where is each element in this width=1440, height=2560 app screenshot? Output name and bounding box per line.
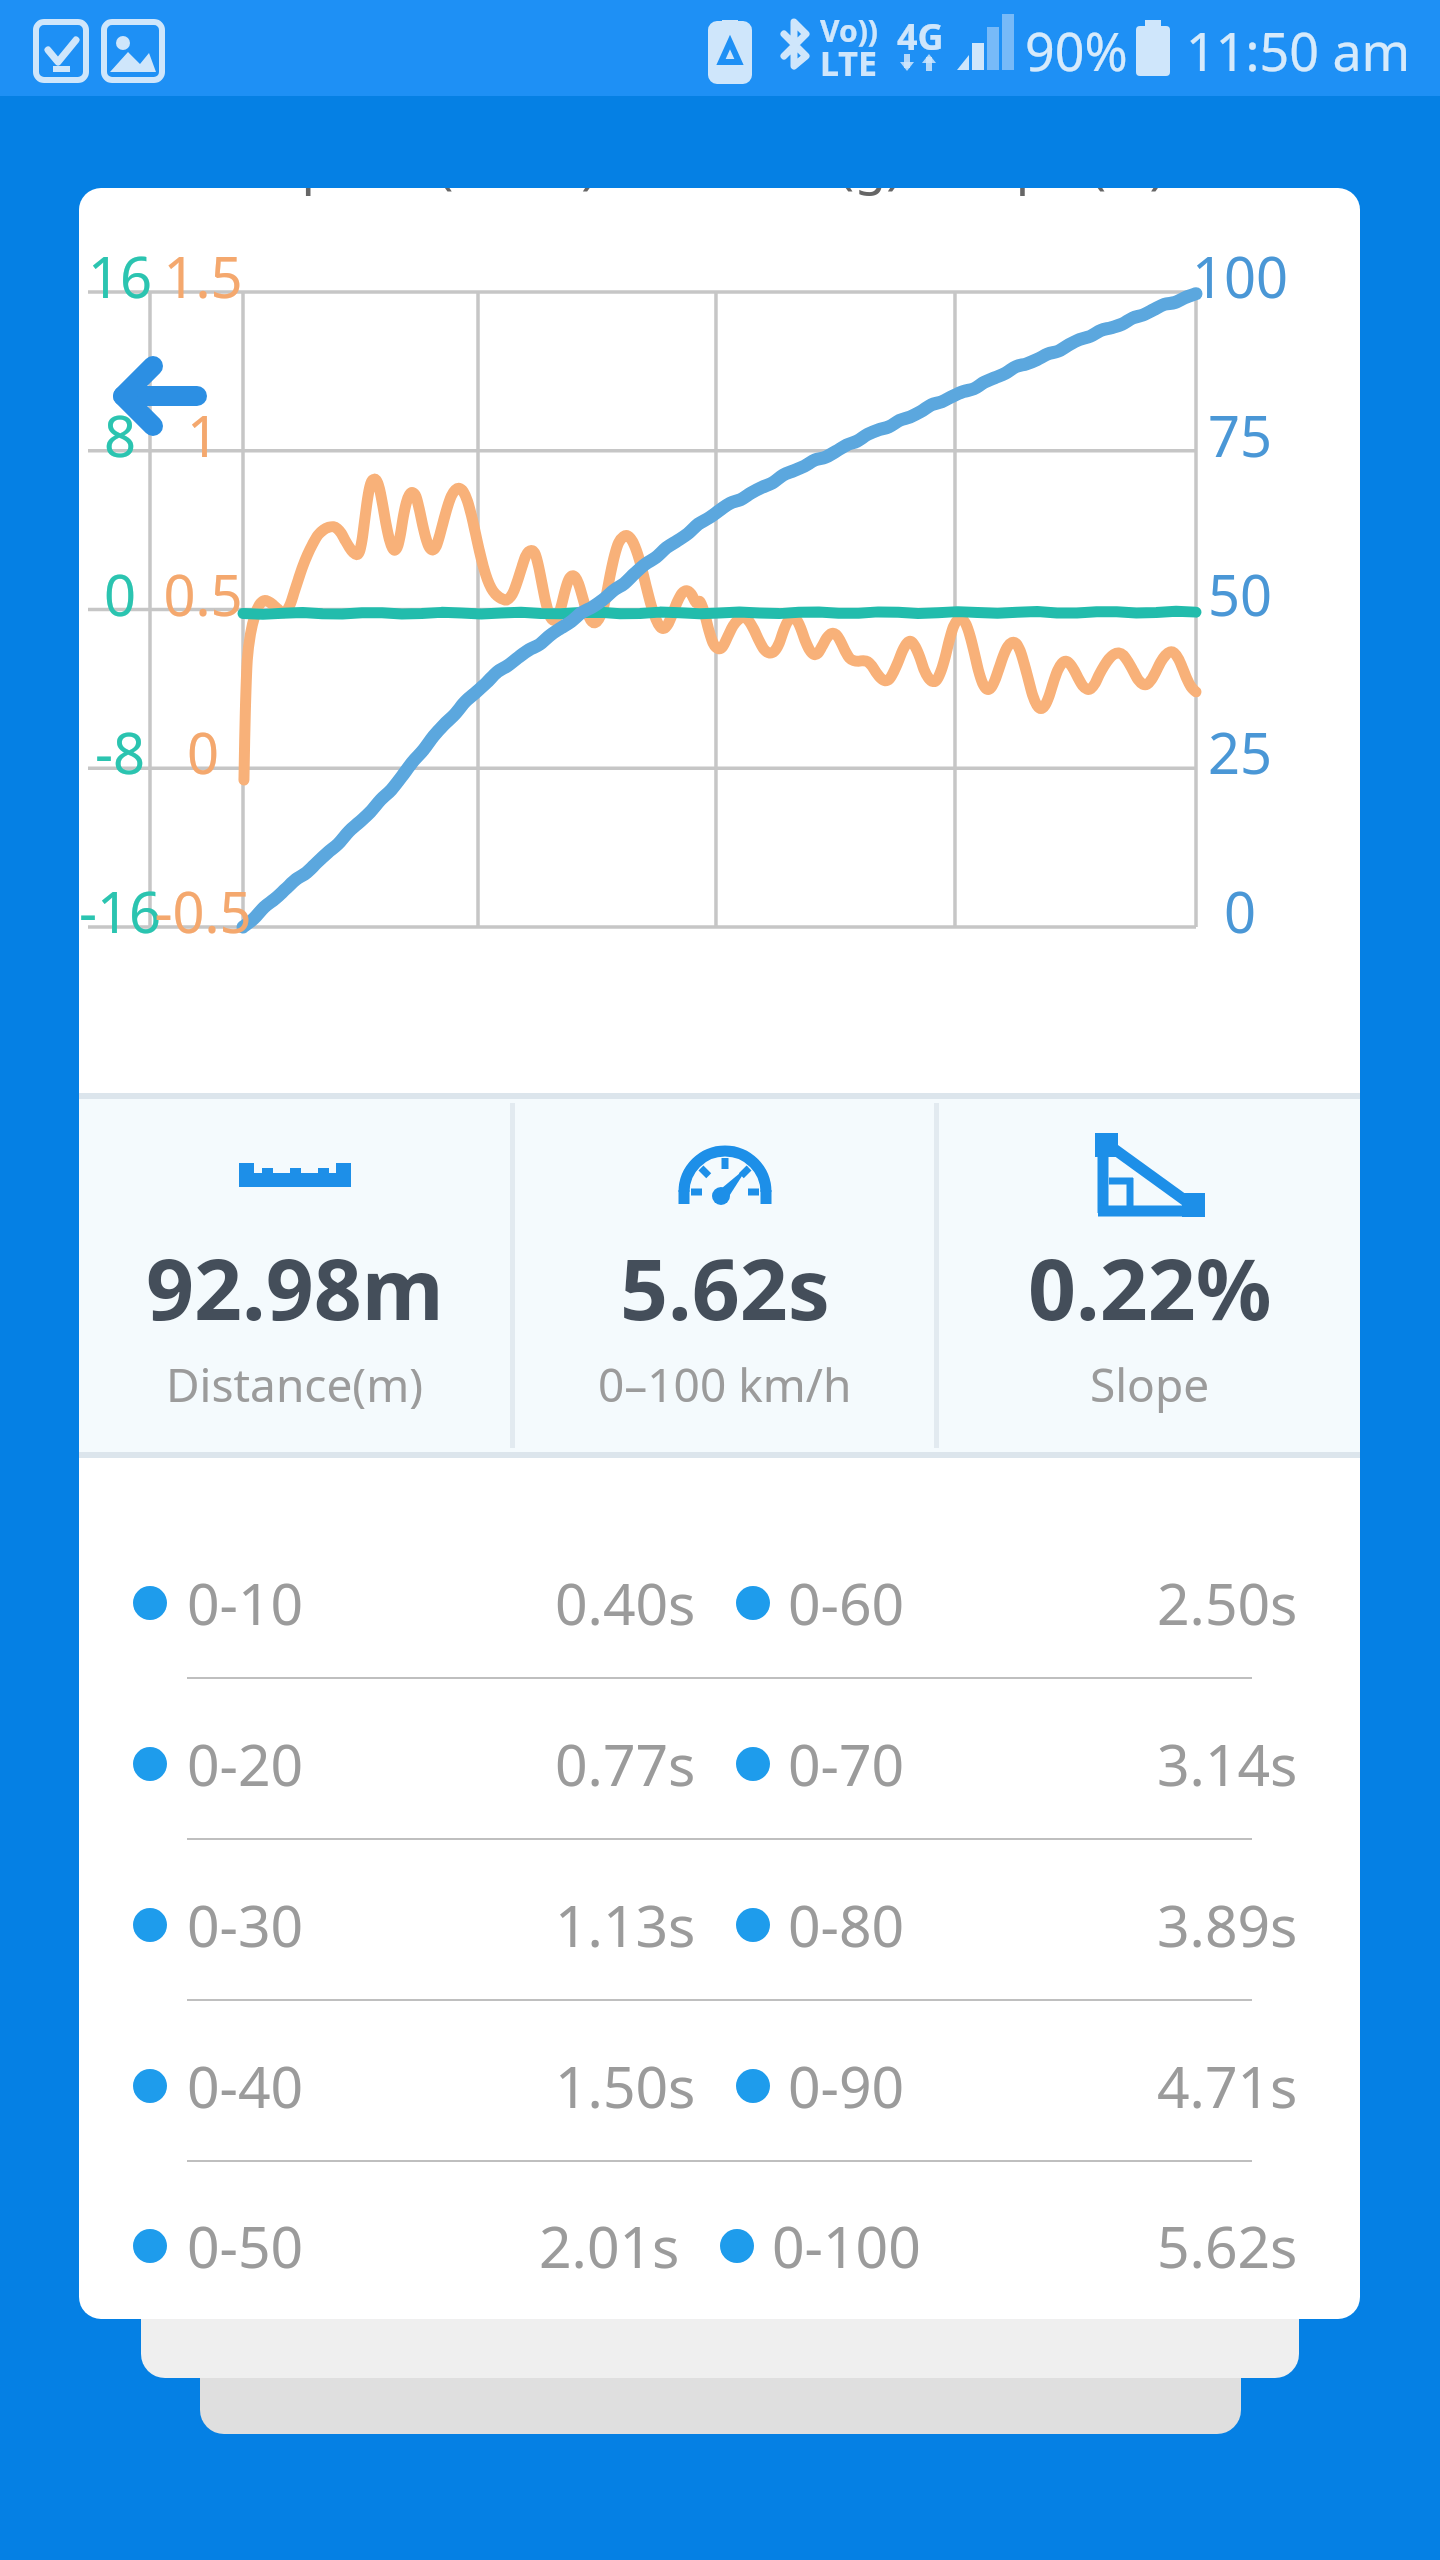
- staticText: 11:50 am: [1186, 15, 1411, 86]
- staticText: 2.50s: [1157, 1564, 1298, 1642]
- staticText: 0: [79, 714, 353, 790]
- staticText: 3.14s: [1157, 1725, 1298, 1803]
- button[interactable]: 5.62s: [515, 1099, 934, 1452]
- staticText: 8: [79, 397, 270, 473]
- staticText: 0: [1090, 873, 1360, 949]
- button[interactable]: 0-50: [79, 2172, 1360, 2319]
- staticText: 4.71s: [1157, 2047, 1298, 2125]
- staticText: 0-50: [187, 2207, 304, 2285]
- button[interactable]: Acceleration chart: [79, 188, 1360, 1093]
- button[interactable]: 0.22%: [939, 1099, 1360, 1452]
- staticText: 5.62s: [1157, 2207, 1298, 2285]
- staticText: 0-100: [772, 2207, 921, 2285]
- staticText: 3.89s: [1157, 1886, 1298, 1964]
- staticText: LTE: [820, 40, 877, 86]
- staticText: 1: [79, 397, 353, 473]
- staticText: 0.77s: [555, 1725, 696, 1803]
- staticText: 0.5: [79, 556, 353, 632]
- staticText: 0-40: [187, 2047, 304, 2125]
- staticText: 1.5: [79, 238, 353, 314]
- staticText: 90%: [1025, 15, 1128, 86]
- staticText: -8: [79, 714, 270, 790]
- staticText: -0.5: [79, 873, 353, 949]
- staticText: 75: [1090, 397, 1360, 473]
- button[interactable]: Back: [102, 351, 222, 461]
- staticText: -16: [79, 873, 270, 949]
- button[interactable]: 0-30: [79, 1850, 1360, 1999]
- staticText: 100: [1090, 238, 1360, 314]
- staticText: 0-20: [187, 1725, 304, 1803]
- button[interactable]: 0-10: [79, 1528, 1360, 1677]
- staticText: 0.40s: [555, 1564, 696, 1642]
- staticText: 50: [1090, 556, 1360, 632]
- staticText: 0–100 km/h: [598, 1353, 852, 1416]
- staticText: 0-60: [788, 1564, 905, 1642]
- staticText: Slope: [1090, 1353, 1210, 1416]
- staticText: 5.62s: [620, 1230, 830, 1344]
- staticText: 4G: [897, 12, 944, 61]
- staticText: 1.13s: [555, 1886, 696, 1964]
- staticText: 0-10: [187, 1564, 304, 1642]
- staticText: Speed (km/h) G-Force (g) Slope (%): [273, 188, 1166, 198]
- staticText: 0: [79, 556, 270, 632]
- staticText: 0-80: [788, 1886, 905, 1964]
- staticText: 0-90: [788, 2047, 905, 2125]
- staticText: 0-70: [788, 1725, 905, 1803]
- staticText: 16: [79, 238, 270, 314]
- button[interactable]: 0-20: [79, 1689, 1360, 1838]
- staticText: 25: [1090, 714, 1360, 790]
- staticText: 92.98m: [146, 1230, 444, 1344]
- staticText: Distance(m): [166, 1353, 423, 1416]
- button[interactable]: 0-40: [79, 2011, 1360, 2160]
- staticText: 0.22%: [1028, 1230, 1272, 1344]
- staticText: 1.50s: [555, 2047, 696, 2125]
- staticText: 0-30: [187, 1886, 304, 1964]
- staticText: Vo)): [820, 10, 878, 51]
- staticText: 2.01s: [539, 2207, 680, 2285]
- button[interactable]: 92.98m: [79, 1099, 510, 1452]
